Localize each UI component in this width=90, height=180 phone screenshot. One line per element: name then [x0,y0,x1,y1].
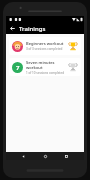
button[interactable]: Back [8,24,17,33]
button[interactable]: Recents [63,153,70,160]
staticText: Seven minutes workout [26,60,66,70]
staticText: Beginners workout [26,41,64,46]
other: Gold trophy [68,41,78,51]
button[interactable]: 7 [9,58,81,76]
staticText: 1 of 10 sessions completed [26,71,64,75]
staticText: 3 of 3 sessions completed [26,47,63,51]
button[interactable]: Home [42,153,49,160]
other: Silver trophy [68,62,78,72]
staticText: 7 [16,64,20,72]
button[interactable]: Back [20,153,27,160]
button[interactable]: Beginners workout [9,37,81,55]
staticText: Trainings [19,25,46,33]
